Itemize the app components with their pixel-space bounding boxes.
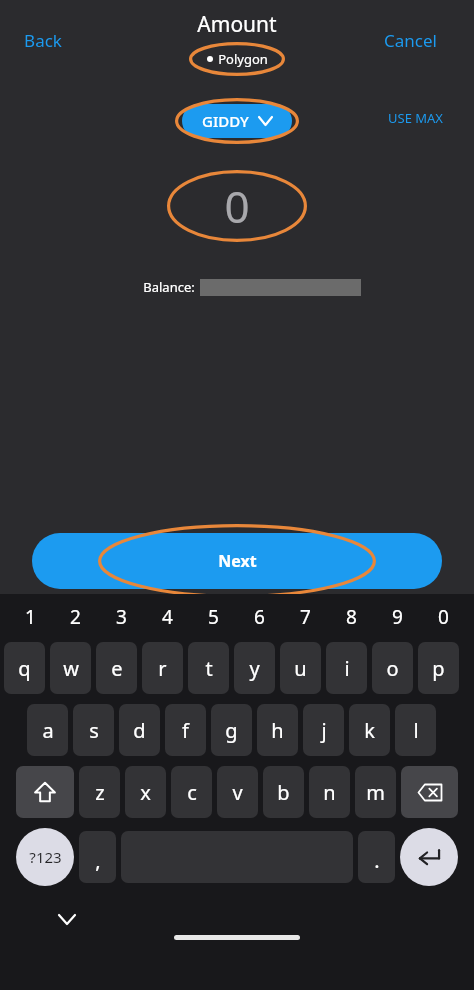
staticText: Amount	[197, 10, 277, 39]
staticText: 1	[25, 604, 36, 630]
staticText: y	[249, 655, 260, 682]
button[interactable]: 1	[8, 594, 53, 640]
button[interactable]: f	[165, 704, 206, 756]
button[interactable]: Enter	[400, 828, 458, 886]
button[interactable]: Next	[32, 533, 442, 589]
button[interactable]: USE MAX	[382, 104, 449, 132]
staticText: f	[182, 717, 189, 744]
button[interactable]: ,	[79, 831, 116, 883]
staticText: GIDDY	[202, 111, 249, 131]
staticText: 6	[254, 604, 265, 630]
button[interactable]: r	[142, 642, 183, 694]
staticText: 2	[70, 604, 81, 630]
staticText: Cancel	[384, 29, 437, 52]
button[interactable]: l	[395, 704, 436, 756]
button[interactable]: .	[358, 831, 395, 883]
button[interactable]: w	[50, 642, 91, 694]
staticText: 8	[346, 604, 357, 630]
staticText: x	[140, 779, 151, 806]
button[interactable]: GIDDY	[182, 104, 292, 138]
staticText: r	[158, 655, 167, 682]
button[interactable]: z	[79, 766, 120, 818]
button[interactable]: n	[309, 766, 350, 818]
button[interactable]: p	[418, 642, 459, 694]
staticText: Polygon	[218, 50, 268, 68]
staticText: 7	[300, 604, 311, 630]
staticText: h	[271, 717, 284, 744]
staticText: ,	[95, 847, 101, 874]
button[interactable]: x	[125, 766, 166, 818]
button[interactable]: i	[326, 642, 367, 694]
staticText: t	[205, 655, 213, 682]
button[interactable]: Backspace	[401, 766, 458, 818]
staticText: l	[413, 717, 419, 744]
button[interactable]: d	[119, 704, 160, 756]
staticText: Balance:	[143, 278, 195, 296]
button[interactable]: 4	[144, 594, 190, 640]
staticText: s	[89, 717, 99, 744]
button[interactable]: 5	[190, 594, 236, 640]
staticText: j	[321, 717, 327, 744]
staticText: d	[133, 717, 146, 744]
button[interactable]: 6	[236, 594, 282, 640]
button[interactable]: m	[355, 766, 396, 818]
staticText: 5	[208, 604, 219, 630]
button[interactable]: 0	[420, 594, 466, 640]
staticText: n	[323, 779, 336, 806]
button[interactable]: 9	[374, 594, 420, 640]
staticText: u	[294, 655, 307, 682]
button[interactable]: 2	[53, 594, 98, 640]
staticText: b	[277, 779, 290, 806]
staticText: 4	[162, 604, 173, 630]
staticText: Back	[24, 29, 62, 52]
button[interactable]: y	[234, 642, 275, 694]
button[interactable]: v	[217, 766, 258, 818]
button[interactable]: j	[303, 704, 344, 756]
button[interactable]: a	[27, 704, 68, 756]
staticText: ?123	[29, 847, 62, 867]
staticText: m	[366, 779, 385, 806]
button[interactable]: s	[73, 704, 114, 756]
button[interactable]: o	[372, 642, 413, 694]
button[interactable]: h	[257, 704, 298, 756]
staticText: k	[364, 717, 375, 744]
staticText: a	[42, 717, 54, 744]
button[interactable]: e	[96, 642, 137, 694]
staticText: 9	[392, 604, 403, 630]
staticText: 3	[116, 604, 127, 630]
staticText: z	[95, 779, 105, 806]
button[interactable]: u	[280, 642, 321, 694]
staticText: v	[232, 779, 243, 806]
staticText: o	[386, 655, 399, 682]
staticText: Next	[218, 550, 257, 572]
staticText: USE MAX	[388, 109, 443, 127]
button[interactable]: Cancel	[376, 23, 445, 58]
button[interactable]: g	[211, 704, 252, 756]
staticText: 0	[224, 176, 250, 236]
button[interactable]: t	[188, 642, 229, 694]
button[interactable]: ?123	[16, 828, 74, 886]
button[interactable]: 7	[282, 594, 328, 640]
staticText: .	[374, 847, 380, 874]
staticText: c	[187, 779, 197, 806]
button[interactable]: c	[171, 766, 212, 818]
button[interactable]: Hide keyboard	[52, 904, 82, 934]
staticText: 0	[438, 604, 449, 630]
button[interactable]: q	[4, 642, 45, 694]
staticText: g	[225, 717, 238, 744]
button[interactable]: Back	[14, 23, 72, 58]
button[interactable]: 8	[328, 594, 374, 640]
staticText: q	[18, 655, 31, 682]
staticText: i	[344, 655, 350, 682]
button[interactable]: 3	[98, 594, 144, 640]
button[interactable]: Shift	[16, 766, 74, 818]
button[interactable]: b	[263, 766, 304, 818]
staticText: w	[63, 655, 79, 682]
staticText: e	[111, 655, 123, 682]
staticText: p	[432, 655, 445, 682]
button[interactable]: k	[349, 704, 390, 756]
